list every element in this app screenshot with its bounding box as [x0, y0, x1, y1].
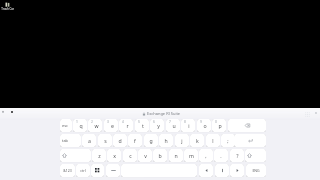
staticText: d [118, 137, 122, 144]
staticText: Exchange Rl Suite [146, 111, 181, 116]
staticText: ? [236, 152, 239, 159]
staticText: f [134, 137, 136, 144]
button[interactable]: t [135, 119, 149, 132]
staticText: a [88, 137, 91, 144]
staticText: n [174, 152, 178, 159]
button[interactable]: ctrl [76, 164, 90, 177]
staticText: e [111, 122, 114, 129]
button[interactable]: Up [215, 164, 229, 177]
staticText: v [144, 152, 147, 159]
staticText: u [172, 122, 176, 129]
button[interactable]: esc [60, 119, 72, 132]
button[interactable]: . [214, 149, 228, 162]
button[interactable]: z [92, 149, 106, 162]
staticText: t [142, 122, 144, 129]
staticText: g [149, 137, 153, 144]
staticText: 2 [91, 119, 93, 123]
button[interactable]: Exchange Rl Suite [142, 110, 181, 117]
button[interactable]: Shift [60, 149, 91, 162]
button[interactable]: Backspace [228, 119, 266, 132]
button[interactable]: Apps [305, 112, 311, 118]
staticText: ENG [252, 168, 260, 173]
button[interactable]: s [98, 134, 112, 147]
staticText: y [157, 122, 160, 129]
button[interactable]: u [166, 119, 180, 132]
staticText: 8 [184, 119, 186, 123]
button[interactable]: d [113, 134, 127, 147]
staticText: 6 [153, 119, 155, 123]
button[interactable]: ? [230, 149, 244, 162]
staticText: w [94, 122, 99, 129]
button[interactable]: h [159, 134, 173, 147]
button[interactable]: p [212, 119, 226, 132]
button[interactable]: Alt [106, 164, 120, 177]
staticText: r [126, 122, 129, 129]
staticText: 3 [107, 119, 109, 123]
staticText: o [203, 122, 207, 129]
button[interactable]: n [169, 149, 183, 162]
button[interactable]: j [175, 134, 189, 147]
staticText: . [220, 152, 222, 159]
button[interactable]: Apps [91, 164, 104, 177]
button[interactable]: o [197, 119, 211, 132]
button[interactable]: Right [230, 164, 244, 177]
staticText: c [129, 152, 132, 159]
button[interactable]: c [123, 149, 137, 162]
button[interactable]: w [88, 119, 102, 132]
staticText: , [205, 152, 207, 159]
staticText: Trash Can [1, 7, 14, 11]
staticText: q [79, 122, 83, 129]
staticText: 0 [215, 119, 217, 123]
staticText: 4 [122, 119, 124, 123]
button[interactable]: Menu [1, 110, 5, 114]
staticText: 5 [138, 119, 140, 123]
button[interactable]: g [144, 134, 158, 147]
button[interactable]: Left [199, 164, 213, 177]
staticText: x [113, 152, 116, 159]
staticText: k [196, 137, 199, 144]
staticText: z [98, 152, 101, 159]
staticText: m [189, 152, 194, 159]
button[interactable]: b [153, 149, 167, 162]
button[interactable]: i [181, 119, 195, 132]
button[interactable]: f [128, 134, 142, 147]
button[interactable]: ; [221, 134, 235, 147]
staticText: l [212, 137, 214, 144]
button[interactable]: x [107, 149, 121, 162]
staticText: ctrl [80, 168, 86, 173]
staticText: 7 [169, 119, 171, 123]
staticText: p [218, 122, 222, 129]
staticText: &123 [63, 168, 72, 173]
staticText: j [181, 137, 183, 144]
button[interactable]: k [190, 134, 204, 147]
button[interactable]: tab [60, 134, 81, 147]
button[interactable]: Shift [245, 149, 266, 162]
button[interactable]: Trash Can [1, 2, 14, 11]
staticText: 1 [76, 119, 78, 123]
button[interactable]: e [104, 119, 118, 132]
staticText: esc [62, 123, 68, 128]
button[interactable]: v [138, 149, 152, 162]
button[interactable]: y [150, 119, 164, 132]
button[interactable]: q [73, 119, 87, 132]
button[interactable]: m [184, 149, 198, 162]
button[interactable]: , [199, 149, 213, 162]
staticText: ; [227, 137, 229, 144]
staticText: i [188, 122, 190, 129]
button[interactable]: Profile [10, 110, 14, 114]
staticText: b [158, 152, 162, 159]
staticText: tab [62, 138, 68, 143]
staticText: s [104, 137, 107, 144]
button[interactable]: &123 [60, 164, 75, 177]
button[interactable]: l [206, 134, 220, 147]
staticText: h [164, 137, 168, 144]
button[interactable]: ENG [246, 164, 266, 177]
button[interactable]: a [82, 134, 96, 147]
staticText: 9 [200, 119, 202, 123]
button[interactable]: Account [314, 111, 318, 115]
button[interactable]: Enter [234, 134, 266, 147]
button[interactable]: r [119, 119, 133, 132]
